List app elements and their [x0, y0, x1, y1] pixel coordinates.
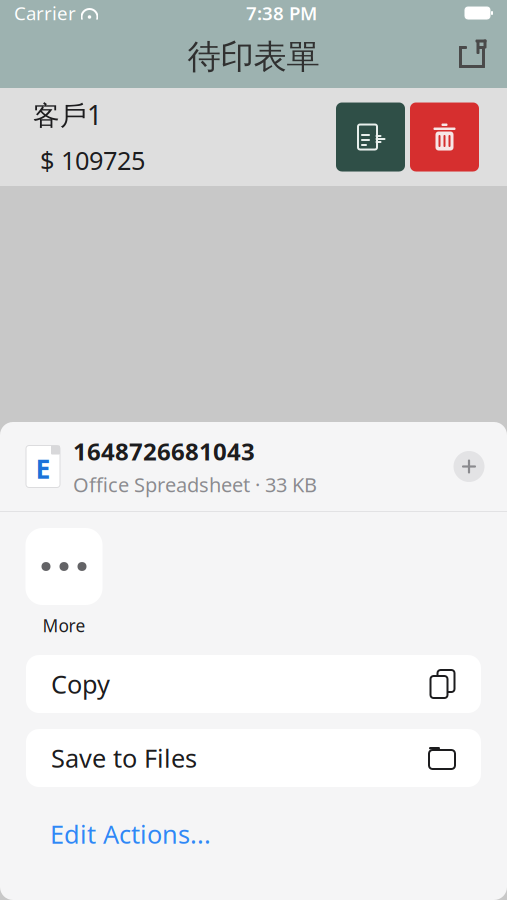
button[interactable]: Export [336, 102, 405, 171]
staticText: E [35, 451, 50, 486]
staticText: Edit Actions... [50, 817, 211, 851]
staticText: More [42, 614, 85, 637]
button[interactable]: Copy [26, 655, 481, 713]
staticText: $ 109725 [40, 143, 145, 177]
staticText: Office Spreadsheet · 33 KB [73, 471, 317, 498]
staticText: 待印表單 [187, 36, 319, 77]
staticText: 客戶1 [33, 97, 102, 132]
button[interactable]: Save to Files [26, 729, 481, 787]
button[interactable]: More [14, 528, 114, 637]
button[interactable]: Close [447, 444, 491, 488]
staticText: Copy [51, 667, 110, 701]
staticText: Save to Files [51, 741, 197, 775]
staticText: 7:38 PM [246, 1, 317, 25]
staticText: 1648726681043 [73, 435, 255, 467]
button[interactable]: Delete [410, 102, 479, 171]
staticText: Carrier [14, 1, 76, 25]
button[interactable]: Edit Actions... [50, 807, 211, 861]
button[interactable]: Share [449, 34, 495, 80]
